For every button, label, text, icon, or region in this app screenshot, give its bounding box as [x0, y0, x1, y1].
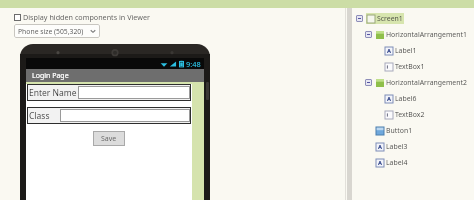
- button[interactable]: Label3: [356, 138, 474, 154]
- button[interactable]: Collapse Screen1: [356, 10, 474, 26]
- staticText: Label3: [386, 142, 408, 151]
- button[interactable]: Label6: [356, 90, 474, 106]
- button[interactable]: Label4: [356, 154, 474, 170]
- button[interactable]: Phone size (505,320): [18, 24, 96, 38]
- button[interactable]: TextBox1: [356, 58, 474, 74]
- staticText: Class: [29, 110, 50, 122]
- staticText: Login Page: [32, 71, 69, 81]
- staticText: Button1: [386, 126, 413, 135]
- button[interactable]: Label1: [356, 42, 474, 58]
- button[interactable]: Button1: [356, 122, 474, 138]
- staticText: Phone size (505,320): [18, 27, 84, 36]
- staticText: TextBox1: [395, 62, 425, 71]
- button[interactable]: Save: [93, 131, 125, 146]
- other: Collapse HorizontalArrangement2: [365, 79, 372, 86]
- other: Collapse Screen1: [356, 15, 363, 22]
- staticText: HorizontalArrangement1: [386, 30, 467, 39]
- staticText: 9:48: [186, 59, 201, 69]
- staticText: Label1: [395, 46, 417, 55]
- button[interactable]: Enter Name: [27, 84, 191, 101]
- staticText: HorizontalArrangement2: [386, 78, 467, 87]
- button[interactable]: TextBox2: [356, 106, 474, 122]
- button[interactable]: Class: [27, 107, 191, 124]
- staticText: Screen1: [377, 14, 403, 23]
- staticText: Enter Name: [29, 87, 77, 99]
- button[interactable]: Display hidden components in Viewer: [14, 12, 150, 22]
- other: Collapse HorizontalArrangement1: [365, 31, 372, 38]
- button[interactable]: Collapse HorizontalArrangement2: [356, 74, 474, 90]
- staticText: Display hidden components in Viewer: [23, 12, 150, 22]
- staticText: Label6: [395, 94, 417, 103]
- button[interactable]: Collapse HorizontalArrangement1: [356, 26, 474, 42]
- staticText: TextBox2: [395, 110, 425, 119]
- staticText: Save: [101, 134, 117, 144]
- staticText: Label4: [386, 158, 408, 167]
